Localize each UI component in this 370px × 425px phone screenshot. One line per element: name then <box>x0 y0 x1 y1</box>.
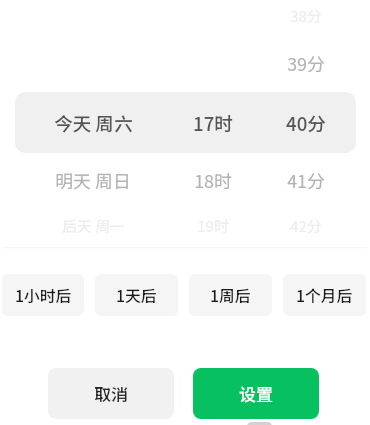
staticText: 设置 <box>239 381 273 406</box>
staticText: 1小时后 <box>15 284 72 307</box>
button[interactable]: 1周后 <box>189 274 272 316</box>
button[interactable]: 1个月后 <box>283 274 366 316</box>
button[interactable]: 39分 <box>216 47 367 79</box>
button[interactable]: 明天 周日 <box>3 164 183 196</box>
button[interactable]: 1天后 <box>95 274 178 316</box>
staticText: 明天 周日 <box>55 167 131 193</box>
staticText: 后天 周一 <box>62 215 125 237</box>
staticText: 19时 <box>197 215 229 237</box>
staticText: 今天 周六 <box>54 109 133 136</box>
staticText: 38分 <box>290 5 322 27</box>
staticText: 18时 <box>194 167 232 193</box>
staticText: 41分 <box>287 167 325 193</box>
staticText: 取消 <box>94 381 128 406</box>
button[interactable]: 17时 <box>123 106 303 138</box>
staticText: 1周后 <box>210 284 251 307</box>
button[interactable]: 设置 <box>193 368 319 419</box>
button[interactable]: 取消 <box>48 368 174 419</box>
button[interactable]: 后天 周一 <box>3 210 183 242</box>
staticText: 1个月后 <box>296 284 353 307</box>
button[interactable]: 18时 <box>123 164 303 196</box>
button[interactable]: 42分 <box>216 210 367 242</box>
button[interactable]: 19时 <box>123 210 303 242</box>
staticText: 1天后 <box>116 284 157 307</box>
button[interactable]: 40分 <box>216 106 367 138</box>
staticText: 40分 <box>286 109 326 136</box>
button[interactable]: 1小时后 <box>2 274 84 316</box>
button[interactable]: 41分 <box>216 164 367 196</box>
staticText: 39分 <box>287 50 325 76</box>
button[interactable]: 今天 周六 <box>3 106 183 138</box>
staticText: 17时 <box>193 109 233 136</box>
staticText: 42分 <box>290 215 322 237</box>
